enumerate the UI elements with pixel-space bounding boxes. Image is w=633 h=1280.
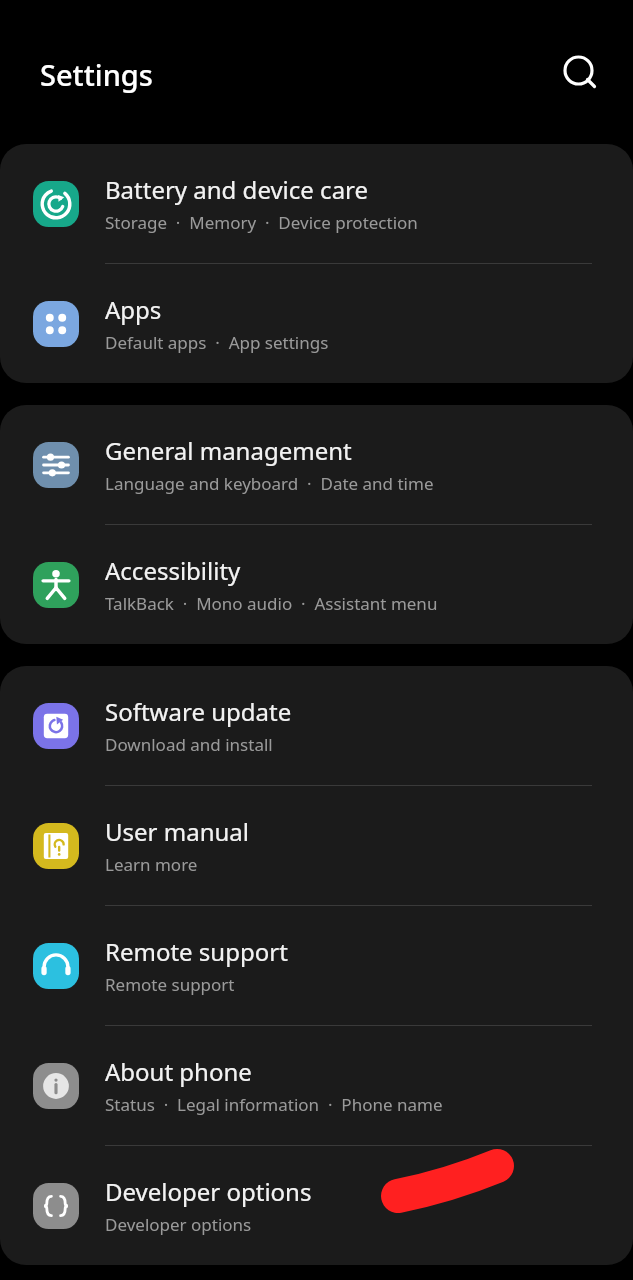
staticText: Language and keyboard · Date and time — [105, 472, 434, 495]
staticText: Default apps · App settings — [105, 331, 329, 354]
button[interactable]: Battery and device care — [0, 144, 633, 263]
staticText: Status · Legal information · Phone name — [105, 1093, 443, 1116]
staticText: Developer options — [105, 1213, 252, 1236]
staticText: Software update — [105, 695, 292, 728]
button[interactable]: Apps — [0, 264, 633, 383]
staticText: Developer options — [105, 1175, 312, 1208]
button[interactable]: Remote support — [0, 906, 633, 1025]
staticText: TalkBack · Mono audio · Assistant menu — [105, 592, 438, 615]
staticText: Remote support — [105, 935, 288, 968]
staticText: General management — [105, 434, 352, 467]
staticText: Storage · Memory · Device protection — [105, 211, 418, 234]
button[interactable]: Developer options — [0, 1146, 633, 1265]
button[interactable]: User manual — [0, 786, 633, 905]
staticText: Settings — [40, 55, 153, 94]
button[interactable]: About phone — [0, 1026, 633, 1145]
staticText: Learn more — [105, 853, 198, 876]
staticText: Download and install — [105, 733, 273, 756]
staticText: User manual — [105, 815, 249, 848]
button[interactable]: Accessibility — [0, 525, 633, 644]
staticText: Battery and device care — [105, 173, 369, 206]
staticText: About phone — [105, 1055, 252, 1088]
button[interactable]: General management — [0, 405, 633, 524]
button[interactable]: Software update — [0, 666, 633, 785]
staticText: Remote support — [105, 973, 235, 996]
button[interactable]: Search — [552, 46, 608, 102]
staticText: Accessibility — [105, 554, 241, 587]
staticText: Apps — [105, 293, 162, 326]
